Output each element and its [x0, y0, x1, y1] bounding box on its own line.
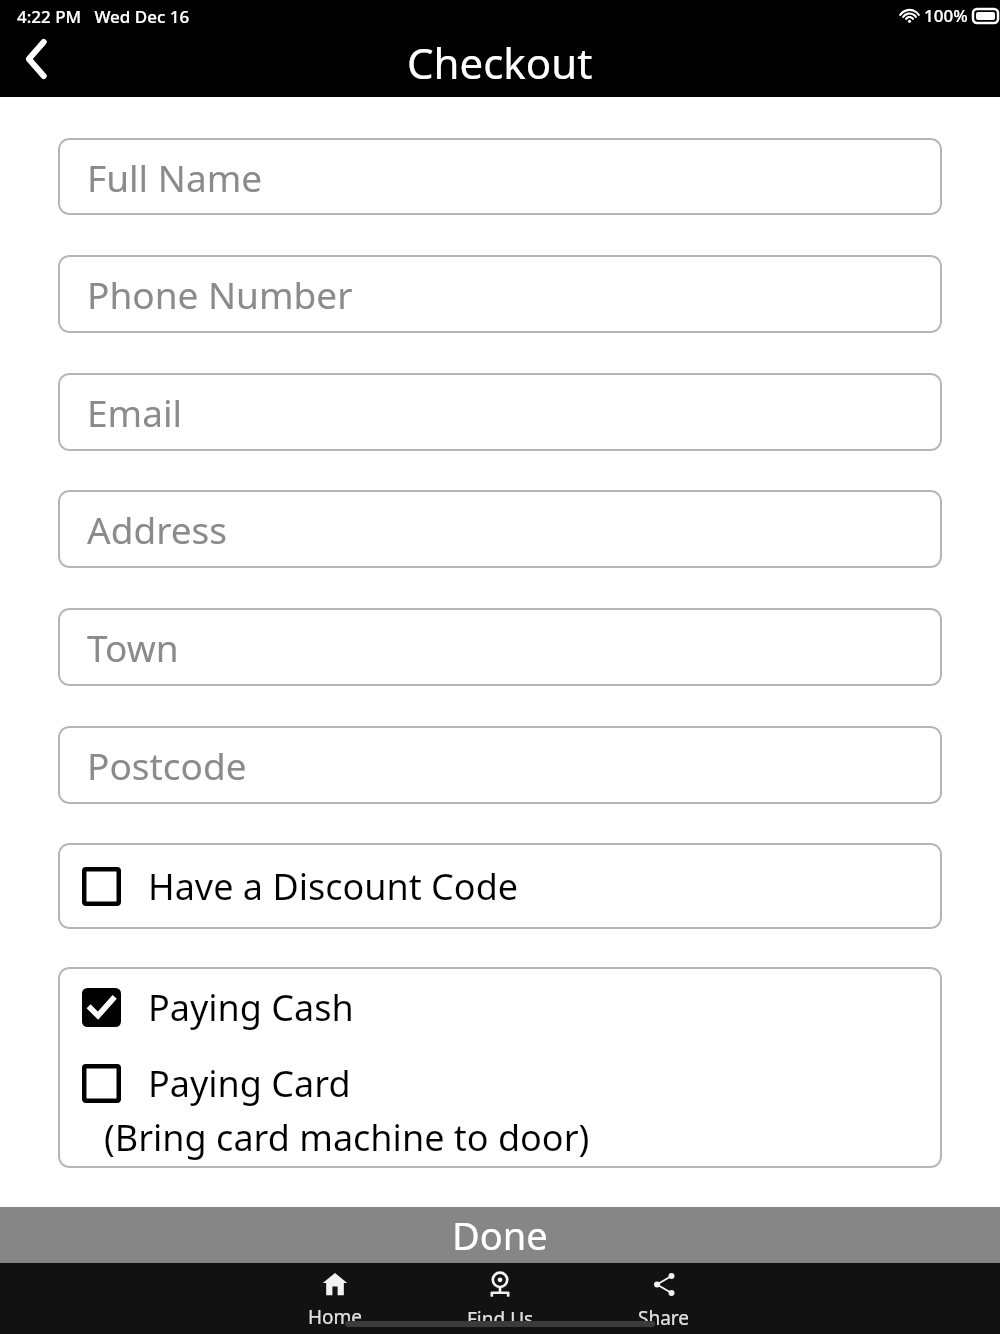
- staticText: 4:22 PM Wed Dec 16: [17, 5, 190, 28]
- button[interactable]: Share: [604, 1269, 724, 1327]
- staticText: Have a Discount Code: [148, 862, 519, 911]
- staticText: Paying Card: [148, 1059, 351, 1108]
- staticText: Done: [452, 1209, 548, 1261]
- button[interactable]: Postcode: [58, 726, 942, 804]
- button[interactable]: Done: [0, 1207, 1000, 1263]
- button[interactable]: Have a Discount Code: [58, 843, 942, 929]
- button[interactable]: Back: [9, 31, 65, 87]
- staticText: Phone Number: [87, 269, 353, 319]
- staticText: Email: [87, 387, 183, 437]
- button[interactable]: Find Us: [440, 1269, 560, 1327]
- button[interactable]: Town: [58, 608, 942, 686]
- staticText: Paying Cash: [148, 983, 354, 1032]
- staticText: (Bring card machine to door): [104, 1113, 590, 1162]
- staticText: Full Name: [87, 152, 263, 202]
- button[interactable]: Paying Cash: [58, 967, 942, 1047]
- button[interactable]: Email: [58, 373, 942, 451]
- staticText: Postcode: [87, 740, 247, 790]
- staticText: Town: [87, 622, 179, 672]
- button[interactable]: Address: [58, 490, 942, 568]
- staticText: Home: [308, 1304, 363, 1327]
- staticText: Find Us: [467, 1306, 534, 1327]
- staticText: 100%: [924, 4, 968, 27]
- button[interactable]: Paying Card: [58, 1047, 942, 1168]
- button[interactable]: Home: [275, 1269, 395, 1327]
- button[interactable]: Full Name: [58, 138, 942, 215]
- staticText: Address: [87, 504, 228, 554]
- staticText: Share: [638, 1305, 690, 1327]
- button[interactable]: Phone Number: [58, 255, 942, 333]
- staticText: Checkout: [407, 34, 593, 91]
